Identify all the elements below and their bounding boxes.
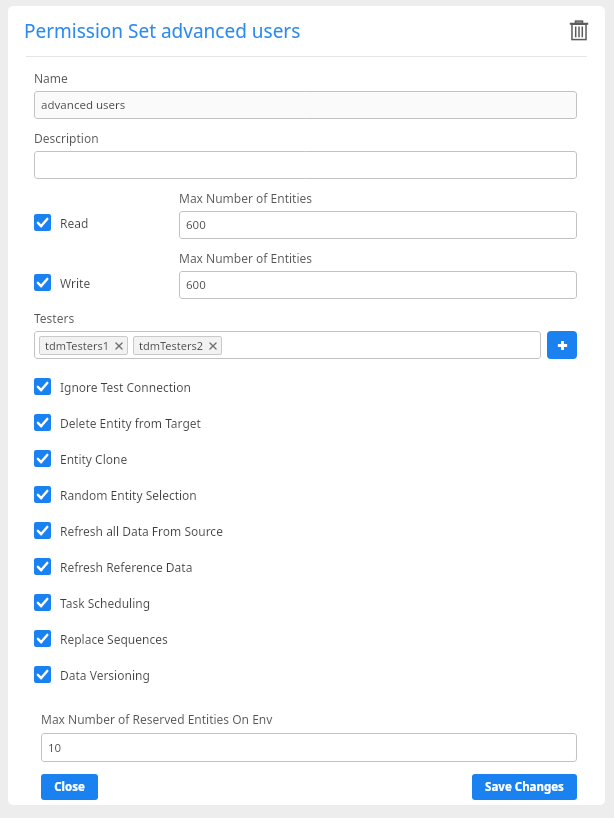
other: Remove tdmTesters2: [209, 342, 217, 350]
staticText: 600: [186, 277, 206, 293]
staticText: Refresh Reference Data: [60, 559, 193, 575]
button[interactable]: Data Versioning: [34, 666, 577, 683]
button[interactable]: Entity Clone: [34, 450, 577, 467]
button[interactable]: Refresh Reference Data: [34, 558, 577, 575]
button[interactable]: Save Changes: [472, 774, 577, 800]
staticText: Random Entity Selection: [60, 487, 197, 503]
button[interactable]: Read: [34, 214, 179, 231]
staticText: Data Versioning: [60, 667, 150, 683]
button[interactable]: tdmTesters1: [39, 336, 128, 355]
staticText: Write: [60, 275, 91, 291]
staticText: 10: [48, 740, 62, 756]
button[interactable]: [34, 151, 577, 179]
staticText: Testers: [34, 310, 75, 326]
staticText: Permission Set advanced users: [24, 18, 562, 44]
staticText: Read: [60, 215, 89, 231]
button[interactable]: Ignore Test Connection: [34, 378, 577, 395]
button[interactable]: Delete: [562, 14, 596, 48]
button[interactable]: tdmTesters2: [133, 336, 222, 355]
staticText: Refresh all Data From Source: [60, 523, 223, 539]
staticText: advanced users: [41, 97, 126, 113]
staticText: Max Number of Entities: [179, 190, 313, 206]
staticText: Close: [54, 779, 85, 795]
button[interactable]: Random Entity Selection: [34, 486, 577, 503]
staticText: Max Number of Entities: [179, 250, 313, 266]
staticText: Ignore Test Connection: [60, 379, 191, 395]
staticText: Name: [34, 70, 68, 86]
button[interactable]: 10: [41, 733, 577, 762]
staticText: tdmTesters2: [139, 338, 204, 353]
button[interactable]: Add tester: [547, 331, 577, 359]
button[interactable]: advanced users: [34, 91, 577, 119]
button[interactable]: 600: [179, 211, 577, 239]
staticText: Entity Clone: [60, 451, 128, 467]
staticText: Max Number of Reserved Entities On Env: [41, 711, 273, 727]
staticText: Description: [34, 130, 99, 146]
other: Remove tdmTesters1: [115, 342, 123, 350]
staticText: Save Changes: [485, 779, 564, 795]
staticText: Task Scheduling: [60, 595, 151, 611]
button[interactable]: tdmTesters1: [34, 331, 541, 359]
button[interactable]: Write: [34, 274, 179, 291]
button[interactable]: Close: [41, 774, 98, 800]
staticText: 600: [186, 217, 206, 233]
button[interactable]: Refresh all Data From Source: [34, 522, 577, 539]
button[interactable]: 600: [179, 271, 577, 299]
staticText: tdmTesters1: [45, 338, 110, 353]
button[interactable]: Replace Sequences: [34, 630, 577, 647]
staticText: Delete Entity from Target: [60, 415, 201, 431]
button[interactable]: Task Scheduling: [34, 594, 577, 611]
button[interactable]: Delete Entity from Target: [34, 414, 577, 431]
staticText: Replace Sequences: [60, 631, 168, 647]
